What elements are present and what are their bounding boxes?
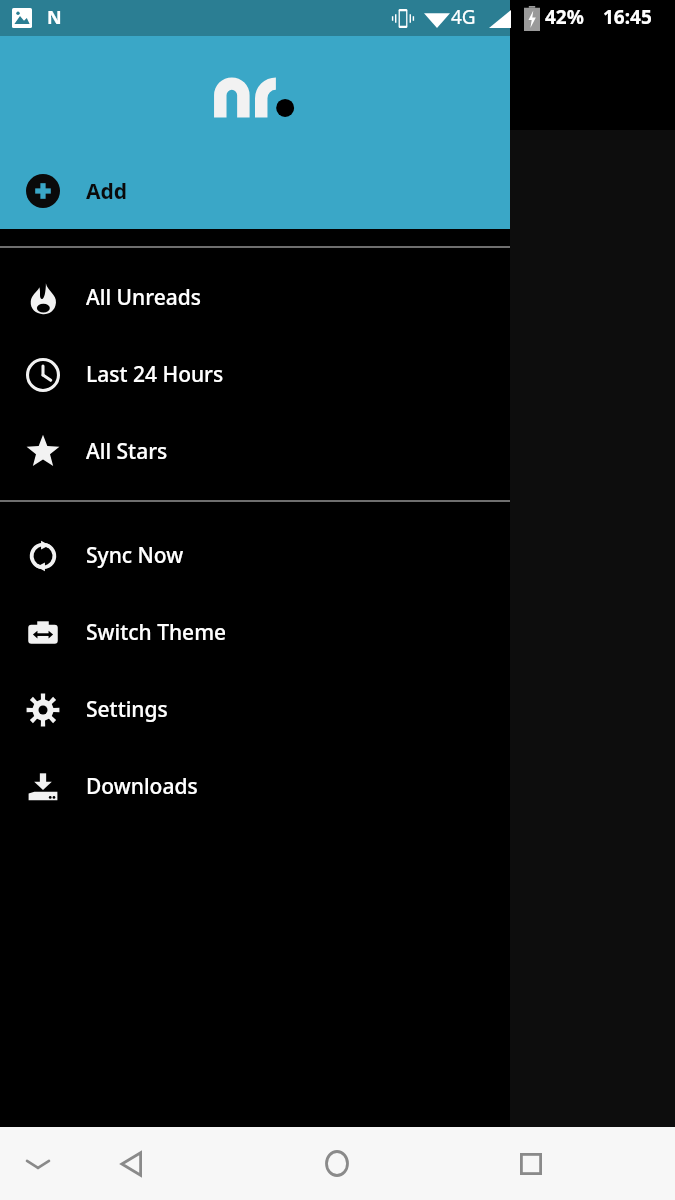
staticText: Last 24 Hours (86, 360, 224, 389)
staticText: Switch Theme (86, 618, 227, 647)
button[interactable]: Downloads (0, 748, 510, 825)
staticText: Add (86, 177, 128, 206)
staticText: Sync Now (86, 541, 184, 570)
staticText: N (47, 5, 62, 30)
staticText: All Unreads (86, 283, 201, 312)
button[interactable]: Sync Now (0, 517, 510, 594)
button[interactable]: Home (306, 1127, 368, 1200)
button[interactable]: Last 24 Hours (0, 336, 510, 413)
staticText: 16:45 (603, 4, 652, 30)
staticText: Downloads (86, 772, 198, 801)
button[interactable]: Add (0, 153, 510, 229)
staticText: All Stars (86, 437, 168, 466)
button[interactable]: All Unreads (0, 259, 510, 336)
button[interactable]: Settings (0, 671, 510, 748)
button[interactable]: Switch Theme (0, 594, 510, 671)
staticText: Settings (86, 695, 168, 724)
staticText: 42% (545, 4, 584, 30)
button[interactable]: Recent apps (500, 1127, 562, 1200)
button[interactable]: All Stars (0, 413, 510, 490)
button[interactable]: Back (100, 1127, 162, 1200)
staticText: 4G (451, 4, 476, 30)
button[interactable]: Hide keyboard (8, 1127, 68, 1200)
